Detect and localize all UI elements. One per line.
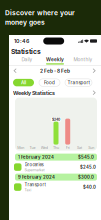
staticText: Mon — [17, 145, 24, 150]
staticText: Transport — [24, 182, 45, 187]
staticText: 2 Feb - 8 Feb — [40, 68, 70, 74]
staticText: Taxi — [24, 188, 31, 192]
staticText: Discover where your — [5, 9, 75, 17]
staticText: $245.0 — [80, 164, 96, 170]
button[interactable]: Transport — [65, 79, 92, 86]
staticText: Supermarket — [24, 168, 44, 172]
staticText: 9 February 2024 — [18, 174, 55, 180]
button[interactable]: Food — [39, 79, 60, 86]
staticText: Sat — [77, 145, 82, 150]
staticText: Sun — [88, 145, 94, 150]
staticText: Weekly Statistics — [13, 90, 55, 96]
staticText: Statistics — [11, 47, 41, 56]
staticText: Groceries — [24, 162, 43, 167]
button[interactable]: Transport — [9, 182, 101, 193]
button[interactable]: Weekly — [41, 56, 69, 65]
button[interactable]: Weekly Statistics — [9, 89, 101, 98]
staticText: Fri — [66, 145, 70, 150]
staticText: Monthly — [73, 56, 92, 62]
button[interactable]: Daily — [13, 56, 41, 65]
staticText: 1 February 2024 — [18, 154, 54, 160]
staticText: Tue — [30, 145, 36, 150]
button[interactable]: Monthly — [69, 56, 97, 65]
staticText: Wed — [41, 145, 48, 150]
staticText: Food — [44, 80, 55, 85]
staticText: Daily — [21, 56, 32, 62]
staticText: $40.0 — [83, 184, 96, 190]
button[interactable]: Next week — [92, 68, 97, 74]
staticText: $545.0 — [78, 154, 94, 160]
button[interactable]: Previous week — [13, 68, 18, 74]
staticText: All — [21, 80, 26, 85]
staticText: Weekly — [46, 56, 64, 62]
staticText: Thu — [53, 145, 59, 150]
staticText: money goes — [5, 18, 45, 26]
staticText: Transport — [67, 80, 89, 85]
staticText: $300.0 — [78, 174, 94, 180]
button[interactable]: All — [13, 79, 34, 86]
staticText: $240 — [52, 117, 60, 122]
staticText: 10:46 — [14, 38, 29, 44]
button[interactable]: Groceries — [9, 162, 101, 173]
